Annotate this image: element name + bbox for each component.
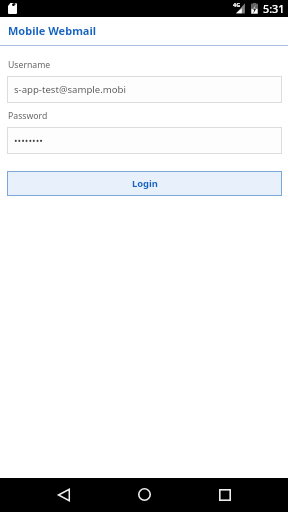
button[interactable]: Login [7,171,282,196]
staticText: s-app-test@sample.mobi [14,83,126,96]
staticText: Username [8,59,51,71]
button[interactable]: Recent apps [219,489,231,501]
button[interactable]: Home [138,488,151,501]
staticText: 5:31 [263,1,285,16]
staticText: Login [132,177,158,190]
staticText: Mobile Webmail [8,23,97,38]
staticText: 4G [233,1,241,8]
button[interactable]: s-app-test@sample.mobi [7,76,282,103]
button[interactable]: •••••••• [7,127,282,154]
staticText: Password [8,110,48,122]
staticText: •••••••• [14,134,43,147]
button[interactable]: Back [58,489,70,501]
